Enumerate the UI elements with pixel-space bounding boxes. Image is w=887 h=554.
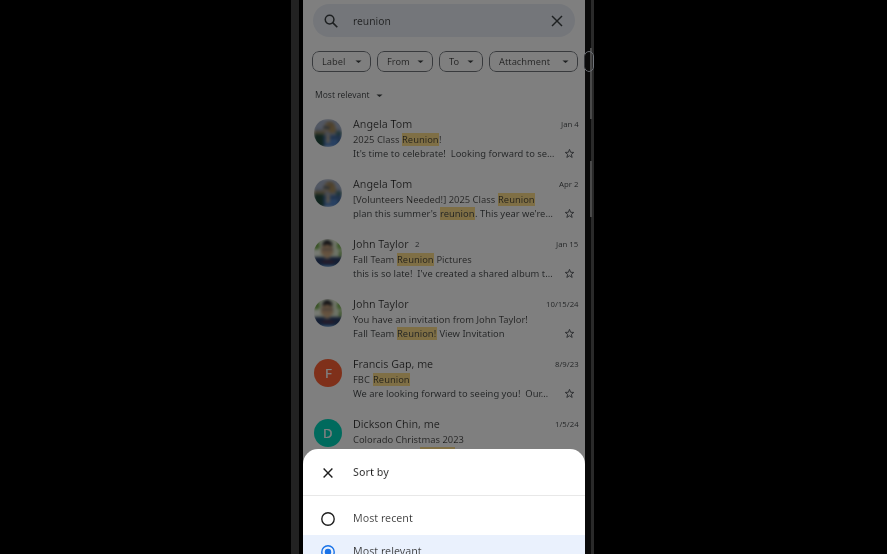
staticText: Colorado Christmas 2023	[353, 433, 464, 446]
button[interactable]: Star	[562, 449, 579, 458]
button[interactable]: Star	[562, 329, 579, 338]
staticText: FBC	[353, 373, 373, 386]
button[interactable]: Angela Tom	[303, 175, 585, 235]
staticText: John Taylor	[353, 297, 409, 312]
staticText: Reunion	[373, 373, 410, 386]
staticText: Attachment	[499, 55, 551, 68]
button[interactable]: Star	[562, 209, 579, 218]
button[interactable]: Attachment	[489, 51, 578, 72]
staticText: Label	[322, 55, 346, 68]
staticText: Most recent	[353, 511, 413, 526]
staticText: John Taylor	[353, 237, 409, 252]
staticText: From	[387, 55, 410, 68]
button[interactable]: Most relevant	[303, 535, 585, 554]
button[interactable]: Clear search	[551, 15, 563, 27]
staticText: reunion	[420, 447, 455, 460]
staticText: F	[325, 364, 332, 382]
staticText: Jan 4	[561, 119, 579, 130]
staticText: Angela Tom	[353, 177, 413, 192]
staticText: . This year we're…	[475, 207, 553, 220]
staticText: It's time to celebrate! Looking forward …	[353, 147, 555, 160]
button[interactable]: To	[439, 51, 483, 72]
staticText: 10/15/24	[546, 299, 579, 310]
staticText: To	[449, 55, 460, 68]
staticText: Jan 15	[556, 239, 579, 250]
staticText: this is so late! I've created a shared a…	[353, 267, 553, 280]
staticText: D	[323, 424, 333, 442]
staticText: Most relevant	[353, 544, 422, 554]
button[interactable]: More filters	[584, 51, 594, 72]
staticText: View Invitation	[437, 327, 505, 340]
staticText: Dickson Chin, me	[353, 417, 440, 432]
staticText: Apr 2	[559, 179, 579, 190]
button[interactable]: Close	[320, 464, 336, 480]
staticText: !	[439, 133, 442, 146]
button[interactable]: Star	[562, 149, 579, 158]
staticText: Reunion	[498, 193, 535, 206]
button[interactable]: John Taylor	[303, 295, 585, 355]
staticText: Thanks for the	[353, 447, 420, 460]
staticText: Reunion!	[397, 327, 437, 340]
staticText: Francis Gap, me	[353, 357, 434, 372]
staticText: Fall Team	[353, 253, 397, 266]
button[interactable]: F	[303, 355, 585, 415]
button[interactable]: Star	[562, 269, 579, 278]
staticText: 1/5/24	[555, 419, 579, 430]
staticText: Most relevant	[315, 89, 370, 101]
button[interactable]: From	[377, 51, 433, 72]
staticText: plan this summer's	[353, 207, 440, 220]
button[interactable]: Label	[312, 51, 371, 72]
button[interactable]: John Taylor	[303, 235, 585, 295]
staticText: You have an invitation from John Taylor!	[353, 313, 528, 326]
button[interactable]: D	[303, 415, 585, 475]
button[interactable]: reunion	[313, 4, 575, 37]
staticText: We are looking forward to seeing you! Ou…	[353, 387, 549, 400]
staticText: reunion	[353, 14, 391, 28]
button[interactable]: Most recent	[303, 496, 585, 535]
staticText: Pictures	[434, 253, 472, 266]
staticText: photos! We…	[455, 447, 515, 460]
staticText: 2	[415, 239, 420, 250]
staticText: 2025 Class	[353, 133, 402, 146]
staticText: 8/9/23	[555, 359, 579, 370]
staticText: reunion	[440, 207, 475, 220]
staticText: Reunion	[402, 133, 439, 146]
button[interactable]: Star	[562, 389, 579, 398]
button[interactable]: Most relevant	[313, 87, 385, 103]
staticText: Sort by	[353, 465, 389, 480]
button[interactable]: Angela Tom	[303, 115, 585, 175]
staticText: Reunion	[397, 253, 434, 266]
staticText: Angela Tom	[353, 117, 413, 132]
staticText: [Volunteers Needed!] 2025 Class	[353, 193, 498, 206]
staticText: Fall Team	[353, 327, 397, 340]
